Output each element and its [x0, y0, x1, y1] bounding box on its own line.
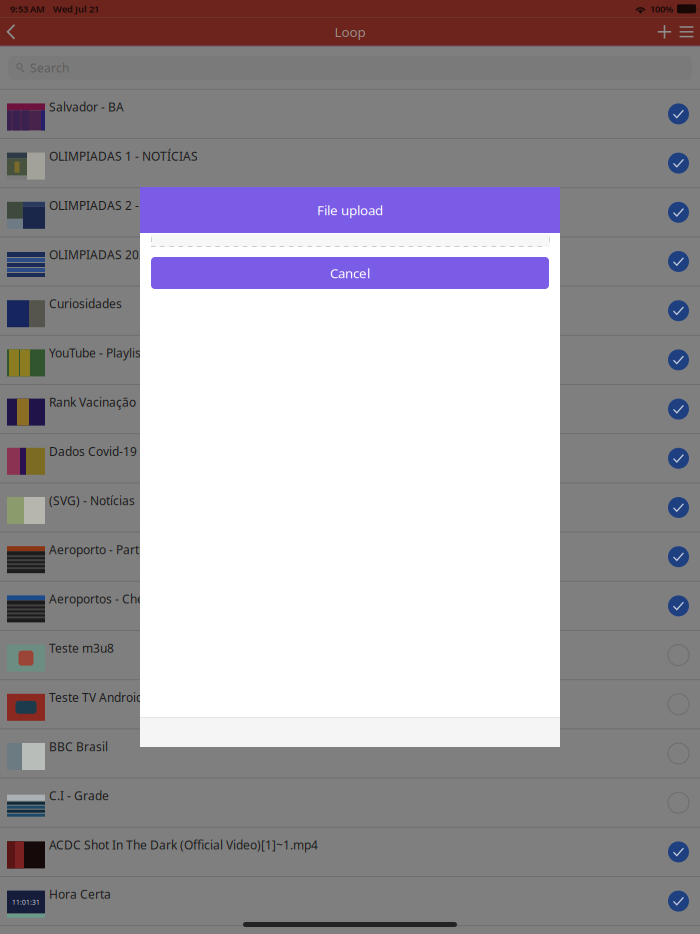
staticText: Teste m3u8 — [49, 640, 114, 656]
staticText: Rank Vacinação — [49, 394, 136, 410]
button[interactable]: Salvador - BA — [0, 89, 700, 138]
staticText: BBC Brasil — [49, 738, 108, 754]
staticText: Cancel — [330, 264, 370, 282]
button[interactable]: OLIMPIADAS 1 - NOTÍCIAS — [0, 138, 700, 187]
staticText: Hora Certa — [49, 886, 111, 902]
button[interactable]: 11:01:31 — [0, 876, 700, 925]
button[interactable]: C.I - Grade — [0, 778, 700, 827]
button[interactable]: Aeroportos - Chegadas — [0, 581, 700, 630]
staticText: Teste TV Android — [49, 689, 143, 705]
button[interactable]: Teste TV Android — [0, 679, 700, 728]
button[interactable]: Menu — [673, 18, 700, 46]
staticText: File upload — [317, 201, 383, 219]
staticText: Search — [30, 60, 69, 76]
staticText: ACDC Shot In The Dark (Official Video)[1… — [49, 837, 318, 853]
staticText: C.I - Grade — [49, 788, 109, 804]
staticText: YouTube - Playlist — [49, 345, 145, 361]
button[interactable]: Back — [0, 18, 30, 46]
button[interactable]: BBC Brasil — [0, 728, 700, 778]
staticText: OLIMPIADAS 2 - NOTÍCIAS — [49, 197, 198, 213]
button[interactable]: OLIMPIADAS 2021 - QUADRO DE MEDALHAS — [0, 236, 700, 286]
button[interactable]: Rank Vacinação — [0, 384, 700, 433]
button[interactable]: Add — [643, 18, 673, 46]
button[interactable]: (SVG) - Notícias — [0, 482, 700, 532]
staticText: (SVG) - Notícias — [49, 492, 135, 508]
button[interactable]: OLIMPIADAS 2 - NOTÍCIAS — [0, 187, 700, 236]
staticText: Curiosidades — [49, 296, 122, 312]
staticText: 11:01:31 — [12, 898, 40, 907]
staticText: Salvador - BA — [49, 99, 124, 115]
button[interactable]: Curiosidades — [0, 286, 700, 335]
staticText: Loop — [334, 23, 365, 41]
button[interactable]: Aeroporto - Partidas — [0, 532, 700, 581]
staticText: Aeroporto - Partidas — [49, 542, 162, 558]
button[interactable]: ACDC Shot In The Dark (Official Video)[1… — [0, 827, 700, 876]
staticText: 9:53 AM — [10, 3, 45, 15]
staticText: OLIMPIADAS 1 - NOTÍCIAS — [49, 148, 198, 164]
button[interactable]: Cancel — [140, 247, 549, 289]
staticText: OLIMPIADAS 2021 - QUADRO DE MEDALHAS — [49, 246, 301, 262]
button[interactable]: Teste m3u8 — [0, 630, 700, 679]
button[interactable]: YouTube - Playlist — [0, 335, 700, 384]
staticText: Dados Covid-19 - Brasil — [49, 443, 179, 459]
staticText: Wed Jul 21 — [53, 3, 99, 15]
staticText: 100% — [650, 3, 673, 15]
button[interactable]: Dados Covid-19 - Brasil — [0, 433, 700, 482]
staticText: Aeroportos - Chegadas — [49, 591, 178, 607]
